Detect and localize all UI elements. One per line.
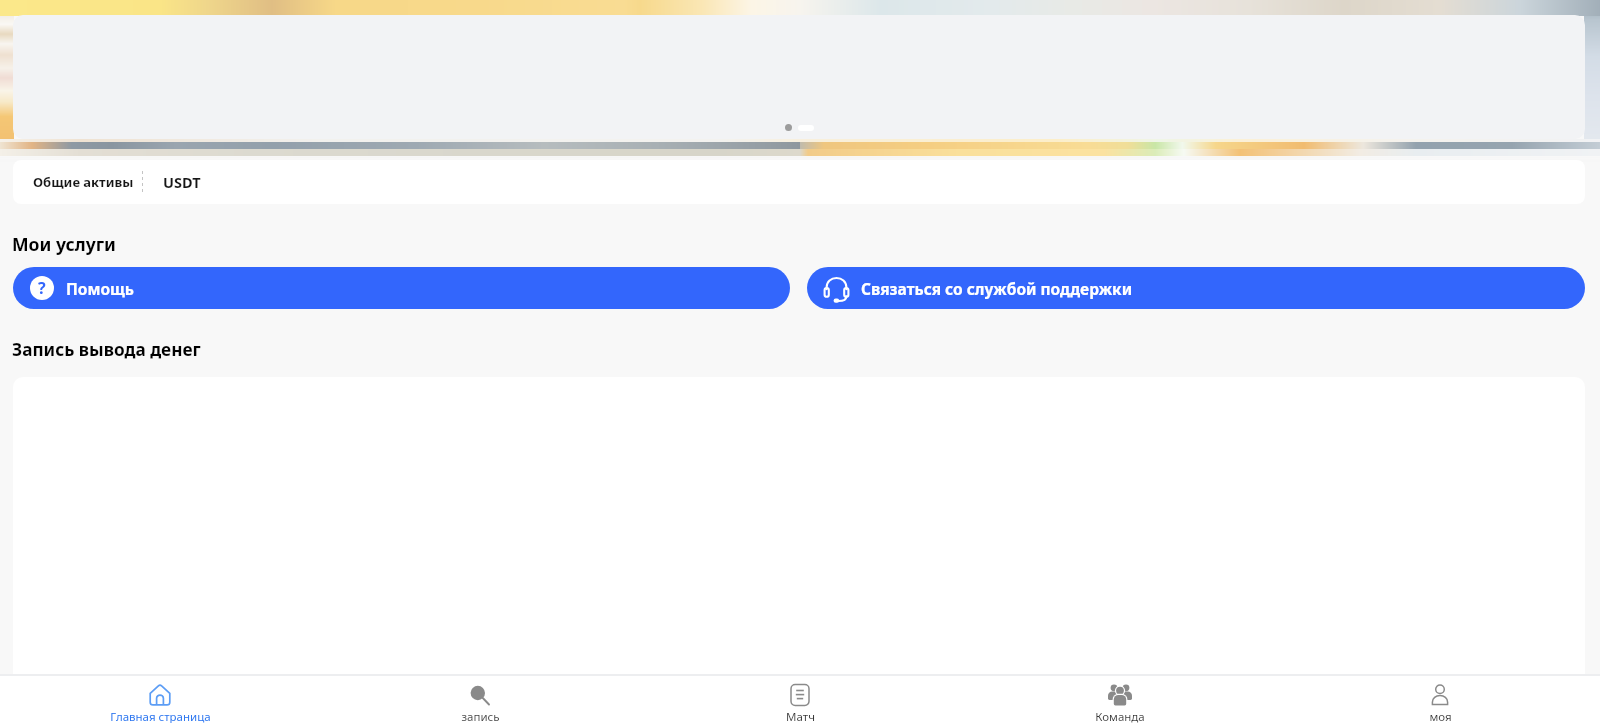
staticText: Помощь (66, 278, 134, 299)
button[interactable]: запись (320, 676, 640, 723)
staticText: Общие активы (33, 173, 134, 191)
staticText: Матч (786, 709, 815, 723)
button[interactable]: Общие активы (13, 160, 1585, 204)
staticText: моя (1429, 709, 1452, 723)
button[interactable]: ? (13, 267, 790, 309)
staticText: ? (38, 277, 46, 299)
staticText: Команда (1095, 709, 1145, 723)
button[interactable]: Матч (640, 676, 960, 723)
staticText: запись (461, 709, 500, 723)
staticText: Главная страница (110, 709, 211, 723)
button[interactable]: Главная страница (0, 676, 320, 723)
button[interactable]: Команда (960, 676, 1280, 723)
staticText: USDT (163, 172, 201, 192)
button[interactable]: моя (1280, 676, 1600, 723)
staticText: Запись вывода денег (12, 338, 201, 361)
staticText: Мои услуги (12, 232, 116, 256)
button[interactable]: Связаться со службой поддержки (807, 267, 1585, 309)
staticText: Связаться со службой поддержки (861, 278, 1133, 299)
